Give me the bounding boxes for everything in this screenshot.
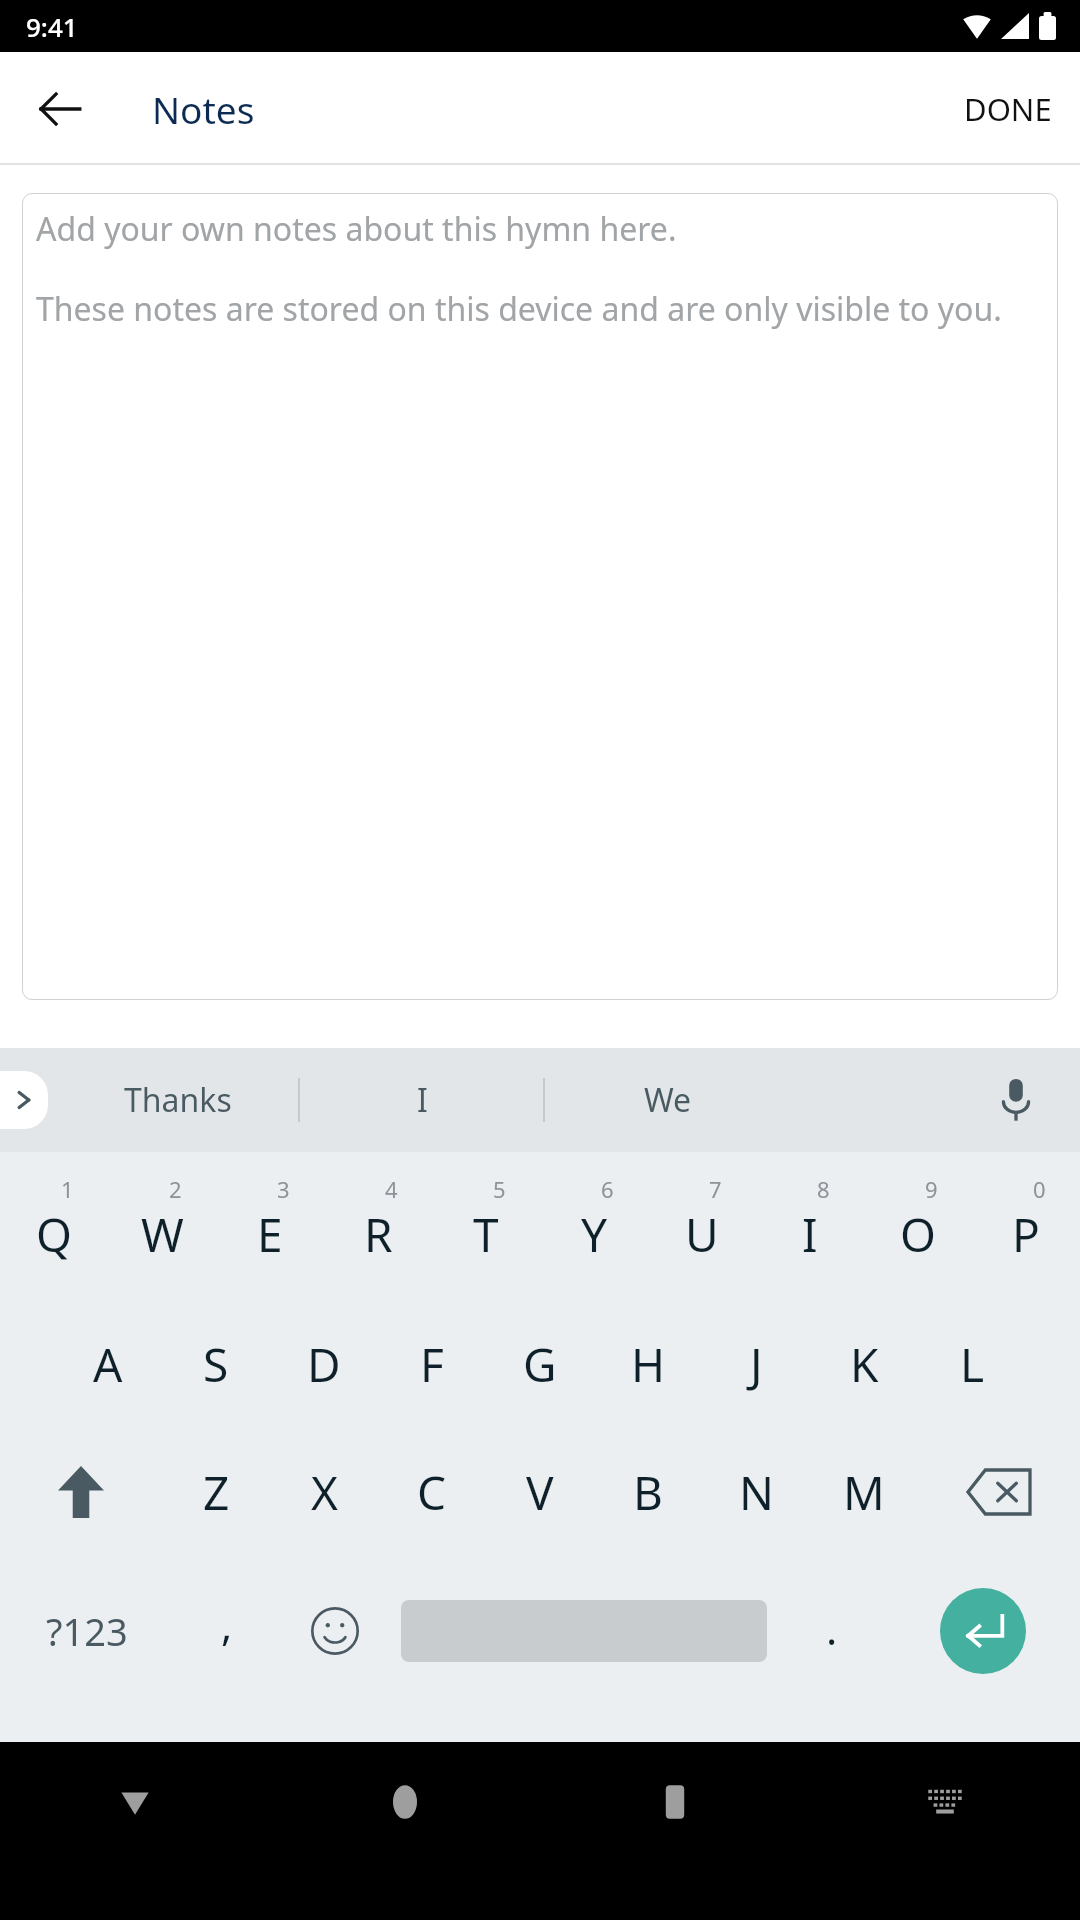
staticText: 6 [601, 1174, 614, 1204]
button[interactable]: 2 [108, 1152, 216, 1300]
staticText: O [900, 1203, 936, 1266]
staticText: S [203, 1333, 229, 1396]
button[interactable]: Enter [886, 1556, 1080, 1706]
staticText: K [850, 1333, 879, 1396]
button[interactable]: , [173, 1556, 281, 1706]
staticText: These notes are stored on this device an… [36, 287, 1002, 331]
button[interactable]: A [54, 1300, 162, 1428]
button[interactable]: 3 [216, 1152, 324, 1300]
button[interactable]: M [810, 1428, 918, 1556]
button[interactable]: 7 [648, 1152, 756, 1300]
button[interactable]: X [270, 1428, 378, 1556]
button[interactable]: . [778, 1556, 886, 1706]
button[interactable]: More suggestions [0, 1071, 48, 1129]
staticText: Notes [152, 84, 255, 134]
button[interactable]: L [918, 1300, 1026, 1428]
staticText: U [685, 1203, 719, 1266]
staticText: 8 [817, 1174, 830, 1204]
staticText: We [644, 1078, 692, 1122]
button[interactable]: K [810, 1300, 918, 1428]
staticText: 7 [709, 1174, 722, 1204]
button[interactable]: Home [270, 1742, 540, 1862]
staticText: 1 [61, 1174, 74, 1204]
staticText: X [311, 1461, 338, 1524]
button[interactable]: Back [0, 1742, 270, 1862]
button[interactable]: ?123 [0, 1556, 173, 1706]
button[interactable]: Z [162, 1428, 270, 1556]
staticText: 5 [493, 1174, 506, 1204]
staticText: 2 [169, 1174, 182, 1204]
staticText: R [364, 1203, 393, 1266]
staticText: B [633, 1461, 663, 1524]
button[interactable]: Backspace [918, 1428, 1080, 1556]
button[interactable]: D [270, 1300, 378, 1428]
staticText: C [417, 1461, 447, 1524]
button[interactable]: N [702, 1428, 810, 1556]
button[interactable]: We [545, 1048, 790, 1152]
staticText: Add your own notes about this hymn here. [36, 207, 677, 251]
button[interactable]: 1 [0, 1152, 108, 1300]
button[interactable]: B [594, 1428, 702, 1556]
staticText: 0 [1033, 1174, 1046, 1204]
staticText: Thanks [124, 1078, 232, 1122]
staticText: Y [581, 1203, 608, 1266]
button[interactable]: Recent apps [540, 1742, 810, 1862]
staticText: W [141, 1203, 184, 1266]
button[interactable]: DONE [936, 52, 1080, 165]
button[interactable]: Emoji [281, 1556, 389, 1706]
button[interactable]: Hide keyboard [810, 1742, 1080, 1862]
button[interactable]: V [486, 1428, 594, 1556]
staticText: D [307, 1333, 341, 1396]
staticText: V [526, 1461, 554, 1524]
staticText: DONE [964, 88, 1052, 130]
button[interactable]: 0 [972, 1152, 1080, 1300]
staticText: L [960, 1333, 985, 1396]
button[interactable]: I [300, 1048, 545, 1152]
staticText: ?123 [46, 1605, 128, 1657]
staticText: T [473, 1203, 499, 1266]
button[interactable]: F [378, 1300, 486, 1428]
staticText: Q [36, 1203, 72, 1266]
staticText: 3 [277, 1174, 290, 1204]
button[interactable]: 6 [540, 1152, 648, 1300]
button[interactable]: 8 [756, 1152, 864, 1300]
button[interactable]: G [486, 1300, 594, 1428]
staticText: 9 [925, 1174, 938, 1204]
staticText: A [93, 1333, 123, 1396]
button[interactable]: Add your own notes about this hymn here. [22, 193, 1058, 1000]
staticText: M [843, 1461, 885, 1524]
button[interactable]: C [378, 1428, 486, 1556]
button[interactable]: 4 [324, 1152, 432, 1300]
staticText: J [750, 1333, 763, 1396]
button[interactable]: J [702, 1300, 810, 1428]
staticText: H [631, 1333, 666, 1396]
staticText: N [739, 1461, 774, 1524]
staticText: E [257, 1203, 283, 1266]
button[interactable]: Space [389, 1556, 778, 1706]
button[interactable]: Back [18, 67, 102, 151]
staticText: 4 [385, 1174, 398, 1204]
button[interactable]: Shift [0, 1428, 162, 1556]
button[interactable]: Voice input [980, 1064, 1052, 1136]
button[interactable]: 5 [432, 1152, 540, 1300]
staticText: I [802, 1203, 818, 1266]
staticText: G [523, 1333, 557, 1396]
staticText: P [1012, 1203, 1040, 1266]
staticText: Z [203, 1461, 230, 1524]
button[interactable]: S [162, 1300, 270, 1428]
button[interactable]: H [594, 1300, 702, 1428]
staticText: . [826, 1600, 838, 1657]
button[interactable]: 9 [864, 1152, 972, 1300]
staticText: 9:41 [26, 9, 78, 44]
staticText: I [417, 1078, 428, 1122]
button[interactable]: Thanks [55, 1048, 300, 1152]
staticText: , [221, 1596, 233, 1653]
staticText: F [420, 1333, 444, 1396]
